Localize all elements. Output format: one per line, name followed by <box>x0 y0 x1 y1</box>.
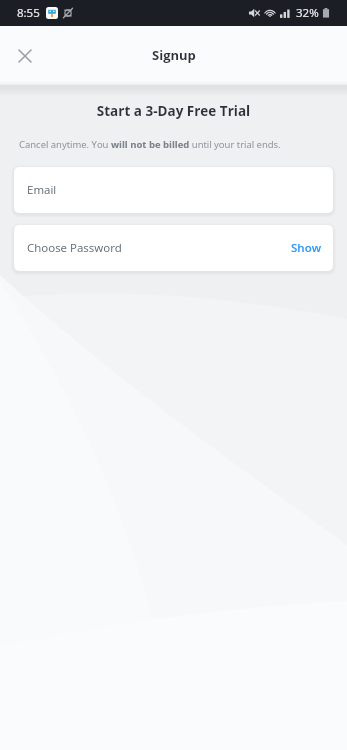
staticText: Cancel anytime. You will not be billed u… <box>19 138 347 151</box>
staticText: 32% <box>296 5 319 21</box>
staticText: Signup <box>152 46 196 64</box>
staticText: Show <box>291 240 322 256</box>
staticText: Email <box>27 182 57 198</box>
button[interactable]: Email <box>14 167 333 213</box>
button[interactable]: Show <box>289 234 324 262</box>
button[interactable]: Close <box>9 40 41 72</box>
button[interactable]: Choose Password <box>14 225 333 271</box>
staticText: 8:55 <box>17 5 40 21</box>
staticText: Start a 3-Day Free Trial <box>0 102 347 120</box>
staticText: Choose Password <box>27 240 122 256</box>
